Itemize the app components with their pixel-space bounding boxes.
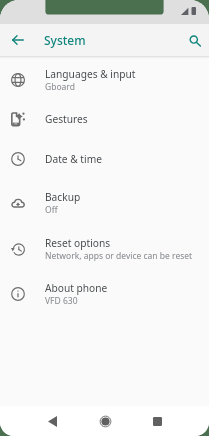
staticText: Languages & input [45, 67, 136, 81]
button[interactable]: Languages & input [0, 57, 209, 102]
button[interactable]: Recent apps [142, 406, 172, 436]
button[interactable]: Navigate up [5, 24, 31, 56]
staticText: Reset options [45, 236, 111, 250]
button[interactable]: Search [181, 24, 208, 56]
staticText: Off [45, 204, 58, 216]
staticText: Gboard [45, 81, 75, 93]
button[interactable]: Reset options [0, 226, 209, 271]
staticText: VFD 630 [45, 295, 78, 307]
button[interactable]: Backup [0, 180, 209, 225]
staticText: Backup [45, 190, 81, 204]
staticText: About phone [45, 281, 108, 295]
staticText: Network, apps or device can be reset [45, 250, 193, 262]
button[interactable]: Back [37, 406, 67, 436]
staticText: System [44, 32, 86, 48]
button[interactable]: Home [90, 406, 120, 436]
button[interactable]: Gestures [0, 99, 209, 138]
staticText: Date & time [45, 152, 102, 166]
button[interactable]: Date & time [0, 139, 209, 178]
button[interactable]: System [38, 24, 92, 56]
staticText: Gestures [45, 112, 88, 126]
button[interactable]: About phone [0, 271, 209, 316]
